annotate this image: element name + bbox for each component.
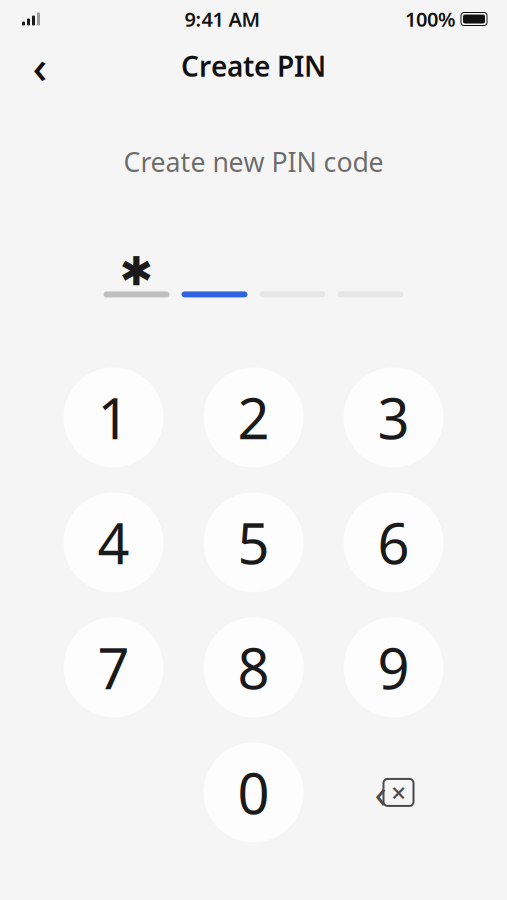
button[interactable]: 2 [183, 361, 323, 473]
staticText: 0 [237, 755, 269, 830]
staticText: Create PIN [181, 47, 326, 85]
staticText: 2 [237, 380, 269, 455]
button[interactable]: 7 [43, 611, 183, 723]
staticText: 7 [97, 630, 129, 705]
button[interactable]: 6 [323, 486, 463, 598]
staticText: 6 [377, 505, 409, 580]
staticText: 4 [97, 505, 129, 580]
button[interactable]: 5 [183, 486, 323, 598]
staticText: × [391, 775, 406, 810]
button[interactable]: 1 [43, 361, 183, 473]
button[interactable]: 9 [323, 611, 463, 723]
button[interactable]: 8 [183, 611, 323, 723]
staticText: 9 [377, 630, 409, 705]
button[interactable]: 0 [183, 736, 323, 848]
staticText: 8 [237, 630, 269, 705]
staticText: 5 [237, 505, 269, 580]
staticText: ‹ [32, 36, 47, 96]
button[interactable]: 3 [323, 361, 463, 473]
staticText: 9:41 AM [184, 6, 260, 32]
button[interactable]: 4 [43, 486, 183, 598]
staticText: Create new PIN code [123, 144, 383, 179]
staticText: 3 [377, 380, 409, 455]
staticText: 1 [97, 380, 129, 455]
staticText: 100% [405, 6, 456, 32]
staticText: ✱ [119, 249, 153, 294]
button[interactable]: Delete [323, 736, 463, 848]
button[interactable]: Back [12, 44, 68, 88]
staticText: ‹ [374, 766, 386, 819]
